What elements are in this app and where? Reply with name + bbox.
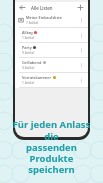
staticText: Grillabend: [22, 60, 42, 65]
staticText: Alltag: [22, 30, 33, 35]
button[interactable]: Mehr Optionen: [77, 31, 85, 39]
button[interactable]: Alltag: [15, 28, 88, 42]
staticText: 3 Artikel: [22, 66, 35, 70]
button[interactable]: Mehr Optionen: [77, 76, 85, 84]
button[interactable]: Zurück: [18, 3, 27, 12]
staticText: Alle Listen: [31, 5, 53, 11]
button[interactable]: Party: [15, 43, 88, 57]
button[interactable]: Meine Einkaufsliste: [15, 13, 88, 27]
staticText: 1 Artikel: [22, 81, 35, 85]
button[interactable]: Mehr Optionen: [77, 46, 85, 54]
staticText: 9 Artikel: [22, 51, 35, 55]
button[interactable]: Mehr Optionen: [77, 16, 85, 24]
staticText: Vorratskammer: [22, 75, 52, 80]
staticText: Meine Einkaufsliste: [26, 15, 63, 20]
button[interactable]: Grillabend: [15, 58, 88, 72]
button[interactable]: Liste hinzufügen: [76, 3, 85, 12]
staticText: 1 Artikel: [22, 36, 35, 40]
staticText: 7 Artikel: [26, 21, 39, 25]
staticText: Party: [22, 45, 32, 50]
button[interactable]: Mehr Optionen: [77, 61, 85, 69]
staticText: Für jeden Anlass die passenden Produkte …: [6, 118, 97, 176]
button[interactable]: Vorratskammer: [15, 73, 88, 87]
